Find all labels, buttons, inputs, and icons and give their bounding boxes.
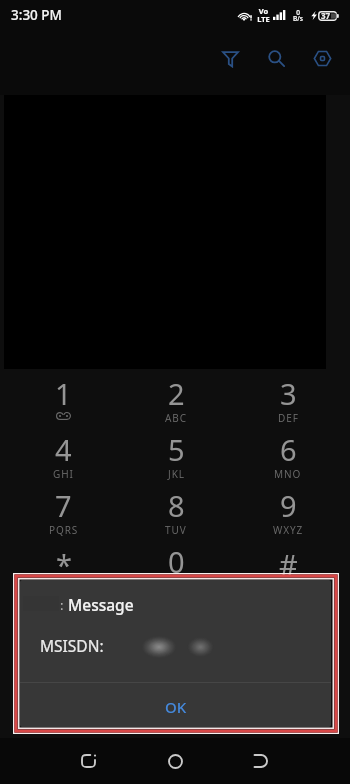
button[interactable]: Filter — [207, 36, 253, 80]
button[interactable]: Home — [153, 741, 197, 781]
staticText: 7 — [55, 486, 72, 525]
button[interactable]: 7 — [7, 481, 120, 537]
button[interactable]: 1 — [7, 369, 120, 425]
button[interactable]: Back — [66, 741, 110, 781]
button[interactable]: Recents — [238, 741, 282, 781]
button[interactable]: 9 — [232, 481, 344, 537]
staticText: GHI — [53, 467, 74, 481]
staticText: 0 B/s — [293, 8, 303, 23]
staticText: 9 — [280, 486, 297, 525]
button[interactable]: 2 — [120, 369, 232, 425]
staticText: Vo LTE — [257, 6, 270, 24]
staticText: PQRS — [49, 523, 79, 537]
staticText: MSISDN: — [40, 635, 104, 656]
button[interactable]: 6 — [232, 425, 344, 481]
staticText: 1 — [55, 374, 72, 413]
staticText: TUV — [165, 523, 187, 537]
staticText: # — [279, 545, 298, 584]
staticText: : — [60, 596, 64, 614]
staticText: 5 — [168, 430, 185, 469]
staticText: 3 — [280, 374, 297, 413]
button[interactable]: # — [232, 537, 344, 593]
button[interactable]: 3 — [232, 369, 344, 425]
staticText: * — [56, 545, 72, 584]
staticText: 8 — [168, 486, 185, 525]
staticText: OK — [165, 697, 187, 717]
staticText: 0 — [168, 542, 185, 581]
staticText: MNO — [274, 467, 302, 481]
button[interactable]: Search — [253, 36, 299, 80]
staticText: 37 — [321, 10, 331, 21]
button[interactable]: * — [7, 537, 120, 593]
staticText: WXYZ — [273, 523, 304, 537]
button[interactable]: 4 — [7, 425, 120, 481]
staticText: JKL — [168, 467, 185, 481]
staticText: + — [173, 579, 179, 593]
button[interactable]: OK — [20, 683, 331, 727]
staticText: 4 — [55, 430, 72, 469]
staticText: ABC — [165, 411, 187, 425]
staticText: Message — [68, 594, 134, 615]
staticText: 3:30 PM — [11, 6, 62, 24]
button[interactable]: 0 — [120, 537, 232, 593]
button[interactable]: 5 — [120, 425, 232, 481]
staticText: DEF — [278, 411, 299, 425]
button[interactable]: Settings — [299, 36, 345, 80]
staticText: 2 — [168, 374, 185, 413]
button[interactable]: 8 — [120, 481, 232, 537]
staticText: 6 — [280, 430, 297, 469]
